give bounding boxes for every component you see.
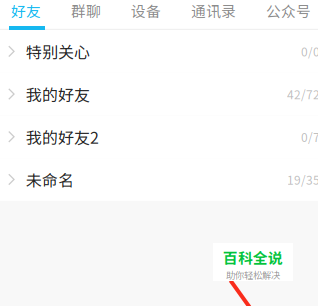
button[interactable]: 我的好友 <box>0 73 318 115</box>
staticText: 42/72 <box>287 85 318 103</box>
staticText: 群聊 <box>71 0 101 21</box>
button[interactable]: 百科全说 <box>213 243 293 281</box>
staticText: 设备 <box>131 0 161 21</box>
staticText: 助你轻松解决 <box>226 268 280 281</box>
staticText: 0/7 <box>301 128 318 145</box>
button[interactable]: 设备 <box>131 0 161 30</box>
button[interactable]: 我的好友2 <box>0 115 318 158</box>
button[interactable]: 群聊 <box>71 0 101 30</box>
staticText: 我的好友 <box>26 82 90 106</box>
button[interactable]: 好友 <box>11 0 41 30</box>
staticText: 特别关心 <box>26 40 90 63</box>
staticText: 我的好友2 <box>26 125 99 148</box>
staticText: 百科全说 <box>223 247 283 268</box>
staticText: 公众号 <box>266 0 311 21</box>
button[interactable]: 公众号 <box>266 0 311 30</box>
button[interactable]: 未命名 <box>0 158 318 201</box>
staticText: 0/0 <box>301 43 318 60</box>
staticText: 好友 <box>11 0 41 21</box>
button[interactable]: 特别关心 <box>0 30 318 73</box>
staticText: 通讯录 <box>191 0 236 21</box>
button[interactable]: 通讯录 <box>191 0 236 30</box>
staticText: 19/35 <box>287 171 318 188</box>
staticText: 未命名 <box>26 168 74 191</box>
